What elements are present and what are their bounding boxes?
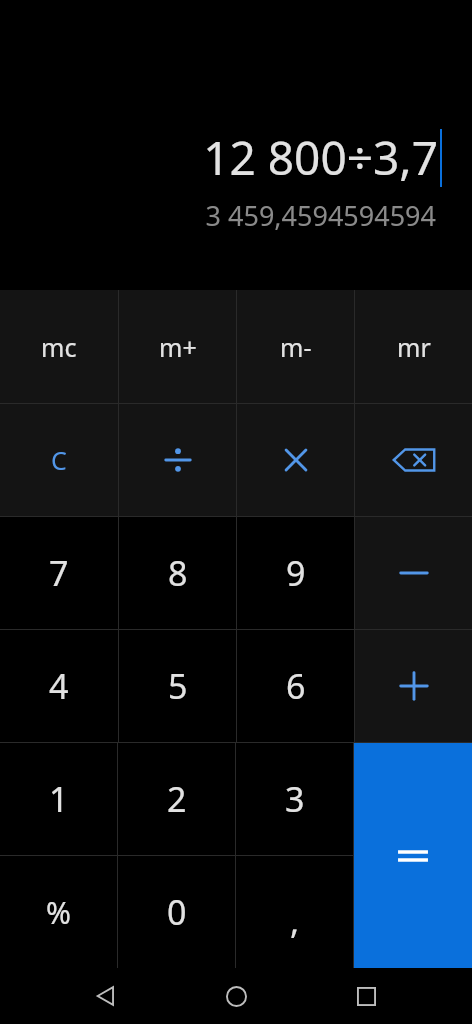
button[interactable]: 9 (237, 517, 354, 629)
staticText: mc (41, 330, 77, 364)
staticText: % (46, 892, 71, 933)
button[interactable]: mr (355, 290, 472, 403)
button[interactable]: 5 (119, 630, 236, 742)
staticText: 8 (168, 550, 188, 596)
staticText: m- (280, 330, 312, 364)
staticText: 3 (285, 776, 305, 822)
button[interactable]: % (0, 856, 117, 968)
button[interactable]: Recent apps (342, 972, 390, 1020)
button[interactable]: Plus (355, 630, 472, 742)
staticText: , (290, 898, 300, 944)
button[interactable]: 7 (0, 517, 118, 629)
button[interactable]: Divide (119, 404, 236, 516)
button[interactable]: 2 (118, 743, 235, 855)
button[interactable]: 8 (119, 517, 236, 629)
staticText: 12 800÷3,7 (203, 126, 438, 189)
button[interactable]: 1 (0, 743, 117, 855)
button[interactable]: 3 (236, 743, 353, 855)
button[interactable]: Multiply (237, 404, 354, 516)
staticText: 1 (49, 776, 69, 822)
button[interactable]: Backspace (355, 404, 472, 516)
staticText: 3 459,4594594594 (205, 197, 436, 234)
staticText: 0 (167, 889, 187, 935)
staticText: 4 (49, 663, 69, 709)
staticText: 2 (167, 776, 187, 822)
staticText: 9 (286, 550, 306, 596)
button[interactable]: C (0, 404, 118, 516)
staticText: 7 (49, 550, 69, 596)
button[interactable]: m+ (119, 290, 236, 403)
staticText: m+ (159, 330, 197, 364)
button[interactable]: Home (212, 972, 260, 1020)
button[interactable]: 0 (118, 856, 235, 968)
button[interactable]: m- (237, 290, 354, 403)
button[interactable]: 4 (0, 630, 118, 742)
button[interactable]: Equals (354, 743, 472, 968)
button[interactable]: Minus (355, 517, 472, 629)
button[interactable]: Back (82, 972, 130, 1020)
staticText: 5 (168, 663, 188, 709)
button[interactable]: 6 (237, 630, 354, 742)
staticText: C (51, 443, 67, 477)
staticText: mr (397, 330, 431, 364)
staticText: 6 (286, 663, 306, 709)
button[interactable]: , (236, 856, 353, 968)
button[interactable]: mc (0, 290, 118, 403)
